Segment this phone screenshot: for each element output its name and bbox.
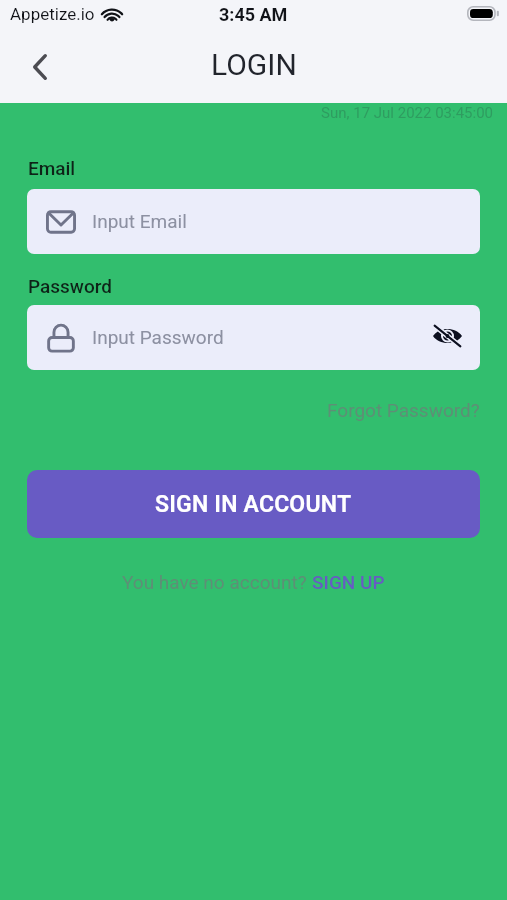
- button[interactable]: SIGN UP: [312, 571, 385, 593]
- staticText: Input Email: [92, 210, 187, 232]
- staticText: Appetize.io: [10, 4, 95, 24]
- button[interactable]: Back: [19, 51, 61, 93]
- staticText: Sun, 17 Jul 2022 03:45:00: [0, 104, 493, 122]
- button[interactable]: Input Password: [27, 305, 480, 370]
- button[interactable]: Show password: [423, 314, 471, 362]
- staticText: You have no account?: [122, 571, 312, 593]
- staticText: Email: [28, 157, 76, 179]
- staticText: SIGN IN ACCOUNT: [155, 491, 352, 518]
- staticText: Password: [28, 275, 112, 297]
- staticText: LOGIN: [211, 47, 297, 82]
- button[interactable]: SIGN IN ACCOUNT: [27, 470, 480, 538]
- button[interactable]: Input Email: [27, 189, 480, 254]
- staticText: Input Password: [92, 326, 224, 348]
- button[interactable]: Forgot Password?: [327, 399, 480, 421]
- staticText: 3:45 AM: [219, 4, 288, 25]
